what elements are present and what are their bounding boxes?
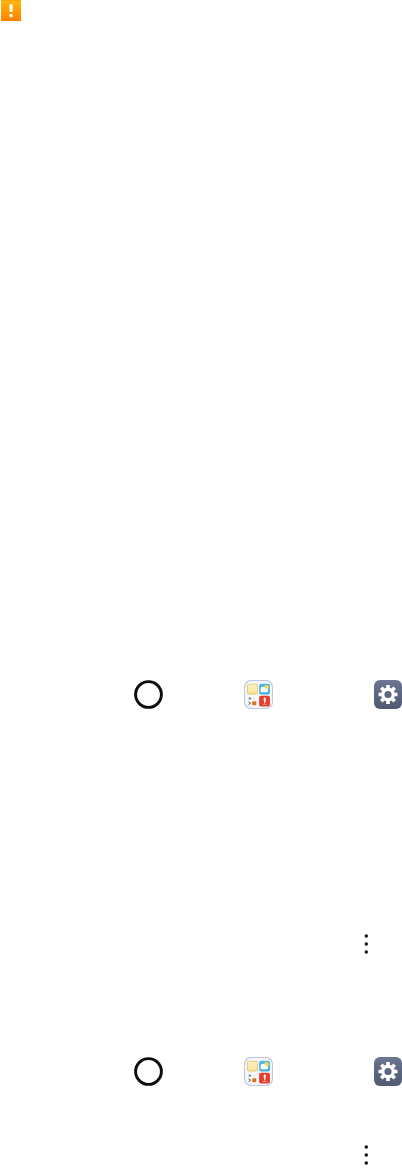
button[interactable]: Warning — [1, 0, 21, 21]
button[interactable]: Apps folder — [244, 680, 273, 709]
button[interactable]: More options — [355, 1140, 377, 1169]
button[interactable]: Settings — [374, 680, 402, 709]
button[interactable]: Record — [134, 680, 163, 709]
button[interactable]: Record — [134, 1057, 163, 1086]
button[interactable]: Settings — [374, 1057, 402, 1086]
button[interactable]: Apps folder — [244, 1057, 273, 1086]
button[interactable]: More options — [355, 929, 377, 959]
